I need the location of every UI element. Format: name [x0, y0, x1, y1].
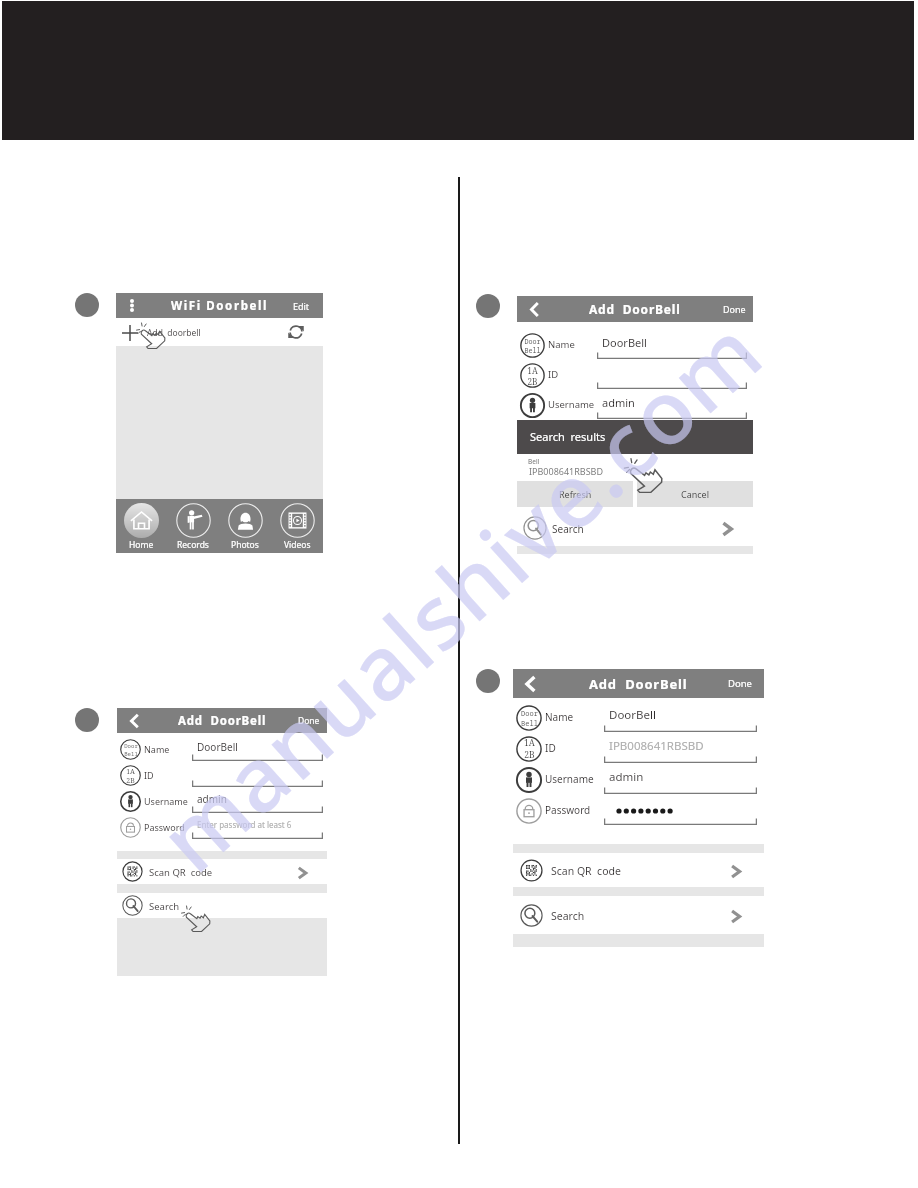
staticText: Add doorbell	[147, 327, 201, 339]
staticText: manualshive.com	[133, 291, 786, 896]
button[interactable]: Videos	[271, 499, 323, 553]
staticText: Home	[129, 539, 154, 551]
button[interactable]: More options	[123, 293, 141, 318]
staticText: 2B	[527, 376, 538, 387]
staticText: 1A	[126, 767, 135, 776]
staticText: Username	[545, 772, 594, 786]
staticText: DoorBell	[609, 707, 656, 723]
button[interactable]: Back	[122, 708, 146, 733]
staticText: Done	[298, 715, 320, 727]
button[interactable]: Back	[522, 296, 546, 322]
staticText: Videos	[284, 539, 311, 551]
button[interactable]: Bell	[517, 454, 753, 481]
staticText: Name	[548, 338, 575, 351]
staticText: Add DoorBell	[589, 675, 688, 693]
staticText: admin	[197, 792, 227, 806]
staticText: ID	[545, 741, 556, 755]
button[interactable]: Refresh	[517, 481, 633, 507]
staticText: Scan QR code	[149, 866, 213, 879]
staticText: DoorBell	[602, 335, 647, 350]
staticText: 2B	[524, 749, 535, 761]
button[interactable]: Search	[517, 507, 753, 546]
button[interactable]: Search	[513, 896, 764, 934]
staticText: Search	[551, 909, 585, 923]
button[interactable]: Cancel	[637, 481, 753, 507]
staticText: Door	[521, 708, 538, 718]
staticText: Search results	[530, 429, 606, 444]
staticText: 1A	[527, 365, 538, 376]
button[interactable]: Done	[713, 296, 755, 322]
staticText: 1A	[524, 737, 535, 749]
staticText: admin	[609, 769, 644, 785]
button[interactable]: Scan QR code	[513, 853, 764, 887]
staticText: Bell	[124, 750, 138, 758]
button[interactable]: Records	[167, 499, 219, 553]
staticText: IPB008641RBSBD	[609, 738, 704, 754]
staticText: Username	[144, 795, 188, 807]
staticText: DoorBell	[197, 740, 238, 754]
staticText: Refresh	[559, 488, 592, 500]
staticText: Enter password at least 6	[197, 819, 292, 830]
button[interactable]: Edit	[279, 293, 323, 318]
staticText: Done	[728, 677, 752, 690]
staticText: Done	[723, 303, 746, 315]
button[interactable]: Scan QR code	[117, 859, 327, 884]
staticText: Bell	[528, 457, 540, 466]
button[interactable]: Back	[518, 669, 542, 698]
button[interactable]: Done	[288, 708, 330, 733]
staticText: ID	[548, 368, 559, 381]
staticText: Search	[149, 900, 180, 913]
staticText: 2B	[126, 776, 135, 785]
staticText: Username	[548, 398, 595, 411]
staticText: Name	[144, 743, 170, 755]
staticText: Password	[545, 803, 591, 817]
staticText: Edit	[293, 300, 310, 312]
staticText: Search	[552, 522, 584, 536]
staticText: ID	[144, 769, 154, 781]
button[interactable]: Add doorbell	[116, 318, 323, 346]
button[interactable]: Home	[116, 499, 167, 553]
button[interactable]: Photos	[219, 499, 271, 553]
staticText: admin	[602, 395, 635, 410]
staticText: Scan QR code	[551, 864, 621, 878]
staticText: Name	[545, 710, 574, 724]
staticText: Add DoorBell	[178, 713, 267, 729]
staticText: Door	[524, 337, 541, 346]
staticText: Password	[144, 821, 185, 833]
staticText: Bell	[521, 718, 538, 728]
button[interactable]: Search	[117, 893, 327, 918]
staticText: WiFi Doorbell	[171, 298, 269, 314]
staticText: Records	[177, 539, 209, 551]
button[interactable]: Done	[719, 669, 761, 698]
staticText: Bell	[524, 346, 541, 355]
staticText: Photos	[231, 539, 259, 551]
staticText: Door	[124, 742, 138, 750]
staticText: Add DoorBell	[589, 301, 681, 317]
staticText: Cancel	[681, 488, 710, 500]
staticText: IPB008641RBSBD	[529, 465, 604, 477]
